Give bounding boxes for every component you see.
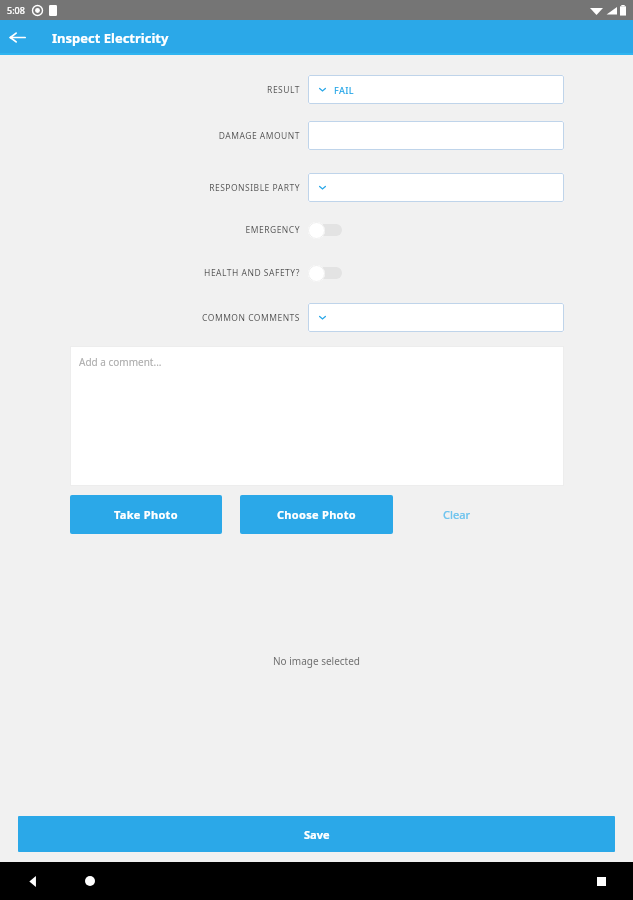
button[interactable]: Back (22, 870, 44, 892)
staticText: 5:08 (7, 4, 25, 16)
staticText: RESULT (68, 84, 300, 96)
staticText: Choose Photo (277, 507, 357, 522)
button[interactable]: Toggle (308, 262, 348, 284)
staticText: Inspect Electricity (52, 29, 169, 47)
button[interactable]: Toggle (308, 219, 348, 241)
staticText: RESPONSIBLE PARTY (68, 182, 300, 194)
staticText: No image selected (0, 654, 633, 668)
button[interactable]: Home (79, 870, 101, 892)
button[interactable]: Back (0, 20, 35, 55)
staticText: HEALTH AND SAFETY? (68, 267, 300, 279)
button[interactable]: Save (18, 816, 615, 852)
staticText: FAIL (334, 84, 355, 96)
button[interactable] (308, 173, 564, 202)
button[interactable]: Take Photo (70, 495, 222, 534)
staticText: DAMAGE AMOUNT (68, 130, 300, 142)
button[interactable]: Clear (443, 495, 471, 534)
staticText: Save (304, 827, 330, 842)
button[interactable] (308, 303, 564, 332)
staticText: Clear (443, 507, 471, 522)
staticText: Take Photo (114, 507, 178, 522)
button[interactable] (308, 121, 564, 150)
button[interactable]: Add a comment... (70, 346, 564, 486)
staticText: COMMON COMMENTS (68, 312, 300, 324)
staticText: EMERGENCY (68, 224, 300, 236)
button[interactable]: FAIL (308, 75, 564, 104)
button[interactable]: Choose Photo (240, 495, 393, 534)
button[interactable]: Recent apps (590, 870, 612, 892)
staticText: Add a comment... (79, 355, 162, 369)
